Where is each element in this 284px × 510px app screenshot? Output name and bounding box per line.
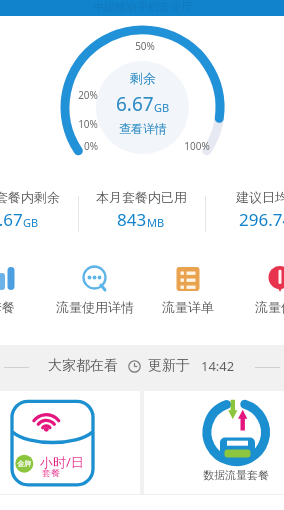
staticText: 金牌: [16, 459, 33, 468]
staticText: 大家都在看: [48, 357, 118, 375]
staticText: 流量详单: [162, 299, 214, 315]
staticText: 小时/日: [40, 453, 84, 471]
button[interactable]: 流量使用详情: [47, 266, 143, 315]
staticText: 6.67: [116, 91, 154, 117]
button[interactable]: 建议日均可用: [205, 189, 284, 231]
staticText: 100%: [172, 139, 222, 153]
staticText: 296.74: [239, 208, 284, 231]
button[interactable]: 流量详单: [140, 266, 236, 315]
staticText: 更新于: [148, 357, 190, 375]
staticText: 50%: [120, 39, 170, 53]
button[interactable]: 本月套餐内已用: [71, 189, 211, 231]
button[interactable]: [144, 391, 284, 495]
staticText: 843: [117, 208, 147, 231]
staticText: 剩余: [130, 70, 156, 86]
staticText: 10%: [63, 117, 113, 131]
staticText: GB: [23, 215, 39, 230]
staticText: 20%: [63, 88, 113, 102]
button[interactable]: 套餐: [0, 266, 50, 315]
staticText: 查看详情: [119, 121, 167, 136]
staticText: 建议日均可用: [236, 189, 284, 205]
staticText: 14:42: [201, 357, 235, 375]
staticText: 0%: [66, 139, 116, 153]
staticText: MB: [147, 215, 165, 230]
button[interactable]: 剩余: [92, 70, 193, 136]
staticText: 流量使用详情: [56, 299, 134, 315]
button[interactable]: 小时日套餐: [0, 391, 140, 495]
staticText: 本月套餐内已用: [96, 189, 187, 205]
staticText: 套餐: [0, 299, 15, 315]
staticText: 数据流量套餐: [186, 468, 284, 482]
button[interactable]: 流量使用: [233, 266, 284, 315]
staticText: 中国移动手机营业厅: [93, 0, 192, 14]
button[interactable]: 本月套餐内剩余: [0, 189, 84, 231]
staticText: GB: [154, 100, 170, 115]
staticText: 6.67: [0, 208, 23, 231]
staticText: 流量使用: [255, 299, 284, 315]
staticText: 本月套餐内剩余: [0, 189, 60, 205]
staticText: 套餐: [42, 467, 60, 478]
